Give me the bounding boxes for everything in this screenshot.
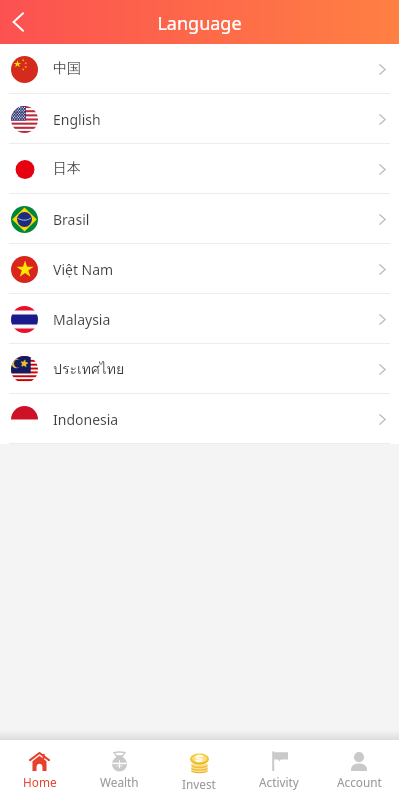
button[interactable]: 中国 — [0, 44, 399, 94]
staticText: Invest — [182, 776, 216, 792]
staticText: Language — [0, 11, 399, 36]
button[interactable]: 日本 — [0, 144, 399, 194]
staticText: English — [53, 110, 101, 129]
staticText: Account — [337, 774, 382, 790]
button[interactable]: Indonesia — [0, 394, 399, 444]
staticText: 中国 — [53, 60, 81, 78]
button[interactable]: Invest — [159, 740, 239, 801]
staticText: Việt Nam — [53, 260, 114, 279]
button[interactable]: ประเทศไทย — [0, 344, 399, 394]
staticText: Indonesia — [53, 410, 119, 429]
staticText: 日本 — [53, 160, 81, 178]
button[interactable]: English — [0, 94, 399, 144]
button[interactable]: Account — [319, 740, 399, 801]
button[interactable]: Việt Nam — [0, 244, 399, 294]
button[interactable]: Back — [0, 0, 36, 44]
button[interactable]: Brasil — [0, 194, 399, 244]
staticText: Home — [23, 774, 57, 790]
button[interactable]: Activity — [239, 740, 319, 801]
button[interactable]: Wealth — [79, 740, 159, 801]
staticText: Wealth — [100, 774, 139, 790]
staticText: Brasil — [53, 210, 90, 229]
staticText: Malaysia — [53, 310, 111, 329]
staticText: Activity — [259, 774, 299, 790]
button[interactable]: Home — [0, 740, 79, 801]
staticText: ประเทศไทย — [53, 358, 125, 380]
button[interactable]: Malaysia — [0, 294, 399, 344]
